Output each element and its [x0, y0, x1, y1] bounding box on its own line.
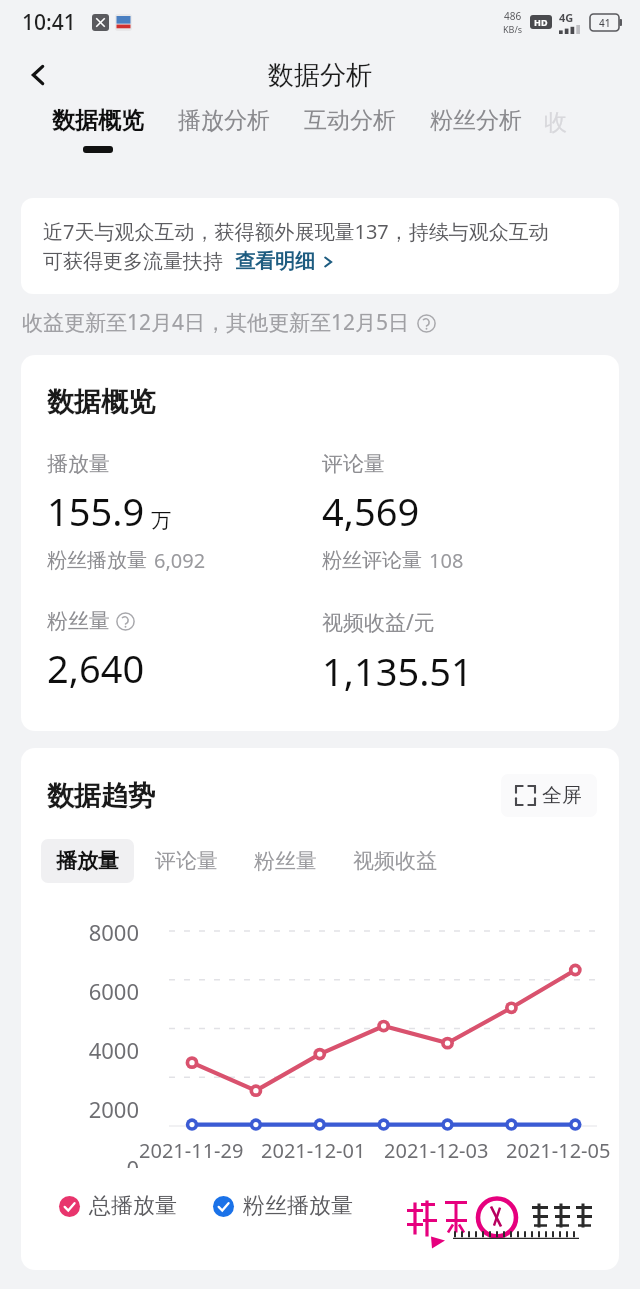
staticText: 2021-12-05: [506, 1137, 611, 1164]
button[interactable]: 粉丝分析: [418, 106, 534, 146]
staticText: 10:41: [22, 8, 76, 37]
staticText: 数据概览: [47, 385, 155, 419]
staticText: 视频收益/元: [322, 608, 435, 637]
staticText: 粉丝量: [254, 848, 317, 874]
staticText: 粉丝播放量: [243, 1192, 353, 1220]
button[interactable]: 视频收益/元: [322, 608, 597, 697]
staticText: 万: [151, 508, 171, 533]
staticText: 数据概览: [52, 106, 144, 135]
staticText: 可获得更多流量扶持: [43, 249, 223, 274]
staticText: 4,569: [322, 485, 420, 537]
staticText: 播放量: [47, 451, 110, 477]
staticText: 4000: [21, 1035, 139, 1065]
staticText: 评论量: [322, 451, 385, 477]
staticText: 6000: [21, 976, 139, 1006]
staticText: 收: [544, 108, 567, 137]
staticText: 8000: [21, 917, 139, 947]
staticText: 41: [599, 16, 611, 30]
staticText: 2021-11-29: [139, 1137, 244, 1164]
staticText: 1,135.51: [322, 645, 473, 697]
staticText: 155.9: [47, 485, 145, 537]
button[interactable]: 互动分析: [292, 106, 408, 146]
staticText: 数据分析: [268, 59, 372, 92]
staticText: 2021-12-03: [384, 1137, 489, 1164]
button[interactable]: 视频收益: [338, 839, 452, 883]
button[interactable]: 全屏: [501, 774, 597, 817]
staticText: 486: [504, 9, 522, 23]
staticText: 粉丝分析: [430, 106, 522, 135]
staticText: HD: [534, 16, 548, 28]
staticText: 全屏: [542, 783, 582, 808]
staticText: 查看明细: [235, 249, 315, 274]
button[interactable]: 粉丝量: [239, 839, 332, 883]
staticText: 108: [429, 547, 464, 574]
button[interactable]: 播放量: [41, 839, 134, 883]
button[interactable]: Back: [14, 51, 62, 99]
button[interactable]: 近7天与观众互动，获得额外展现量137，持续与观众互动: [21, 198, 619, 294]
button[interactable]: 粉丝播放量: [213, 1192, 353, 1220]
staticText: 2,640: [47, 642, 145, 694]
button[interactable]: 帮助: [415, 312, 437, 334]
staticText: 粉丝播放量: [47, 548, 147, 573]
staticText: 粉丝量: [47, 608, 110, 634]
staticText: 2000: [21, 1094, 139, 1124]
staticText: KB/s: [503, 23, 523, 35]
staticText: 播放分析: [178, 106, 270, 135]
staticText: 互动分析: [304, 106, 396, 135]
staticText: 4G: [559, 10, 574, 25]
staticText: 近7天与观众互动，获得额外展现量137，持续与观众互动: [43, 218, 549, 245]
button[interactable]: 评论量: [140, 839, 233, 883]
staticText: 6,092: [154, 547, 206, 574]
button[interactable]: 粉丝量: [47, 608, 322, 694]
staticText: 0: [21, 1153, 139, 1168]
button[interactable]: 播放分析: [166, 106, 282, 146]
staticText: 粉丝评论量: [322, 548, 422, 573]
staticText: 总播放量: [89, 1192, 177, 1220]
staticText: 视频收益: [353, 848, 437, 874]
staticText: 收益更新至12月4日，其他更新至12月5日: [22, 308, 410, 337]
button[interactable]: 评论量: [322, 451, 597, 574]
staticText: 评论量: [155, 848, 218, 874]
staticText: 数据趋势: [47, 779, 155, 813]
staticText: 2021-12-01: [261, 1137, 366, 1164]
button[interactable]: 总播放量: [59, 1192, 177, 1220]
button[interactable]: 数据概览: [40, 106, 156, 153]
staticText: 播放量: [56, 848, 119, 874]
button[interactable]: 播放量: [47, 451, 322, 574]
